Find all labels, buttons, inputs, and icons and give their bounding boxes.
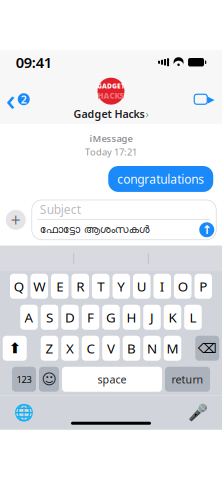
staticText: F <box>87 308 94 326</box>
staticText: N <box>147 339 157 357</box>
button[interactable]: P <box>194 274 212 299</box>
button[interactable]: I <box>153 274 171 299</box>
button[interactable]: F <box>82 305 99 330</box>
button[interactable]: K <box>164 305 181 330</box>
button[interactable]: N <box>143 336 161 361</box>
staticText: ⌫ <box>198 341 217 356</box>
button[interactable]: B <box>123 336 140 361</box>
staticText: ☺ <box>41 371 56 387</box>
staticText: O <box>178 277 188 295</box>
button[interactable]: H <box>123 305 140 330</box>
staticText: M <box>166 339 178 357</box>
button[interactable]: U <box>133 274 150 299</box>
staticText: ▶ <box>207 94 214 104</box>
staticText: R <box>76 277 84 295</box>
staticText: V <box>107 339 115 357</box>
staticText: G <box>106 308 116 326</box>
staticText: P <box>199 277 207 295</box>
staticText: Z <box>45 339 53 357</box>
staticText: Gadget Hacks <box>73 107 144 121</box>
button[interactable]: X <box>61 336 79 361</box>
button[interactable]: Back, 2 unread <box>0 82 36 116</box>
staticText: Subject <box>40 201 81 217</box>
button[interactable]: O <box>174 274 191 299</box>
button[interactable]: FaceTime video call <box>186 82 222 116</box>
staticText: 123 <box>16 373 31 385</box>
button[interactable]: Emoji <box>39 367 59 392</box>
staticText: 2 <box>21 92 27 106</box>
button[interactable]: D <box>61 305 79 330</box>
button[interactable]: R <box>71 274 89 299</box>
button[interactable]: V <box>102 336 120 361</box>
button[interactable]: A <box>20 305 38 330</box>
staticText: L <box>189 308 196 326</box>
button[interactable]: Z <box>41 336 58 361</box>
staticText: E <box>56 277 63 295</box>
staticText: C <box>86 339 94 357</box>
button[interactable]: Dictation <box>174 398 222 428</box>
button[interactable]: S <box>41 305 58 330</box>
button[interactable]: M <box>164 336 181 361</box>
staticText: Y <box>117 277 125 295</box>
staticText: ഫോട്ടോ ആശംസകൾ <box>40 225 150 235</box>
button[interactable]: Y <box>112 274 130 299</box>
button[interactable]: Delete <box>195 336 219 361</box>
button[interactable]: W <box>30 274 48 299</box>
staticText: 09:41 <box>16 52 52 72</box>
staticText: S <box>46 308 53 326</box>
staticText: + <box>11 208 21 231</box>
staticText: X <box>66 339 74 357</box>
button[interactable]: E <box>51 274 68 299</box>
staticText: 🌐 <box>14 404 34 422</box>
button[interactable]: space <box>62 367 162 392</box>
staticText: 🎤 <box>188 404 208 422</box>
staticText: iMessage <box>89 132 132 145</box>
staticText: ⬆ <box>9 340 21 356</box>
button[interactable]: Change keyboard <box>0 398 48 428</box>
staticText: H <box>126 308 136 326</box>
staticText: A <box>24 308 33 326</box>
button[interactable]: return <box>165 367 210 392</box>
staticText: K <box>168 308 176 326</box>
staticText: HACKS <box>97 90 124 101</box>
staticText: › <box>145 107 148 121</box>
staticText: return <box>171 372 203 386</box>
staticText: congratulations <box>117 171 204 187</box>
staticText: I <box>160 277 165 295</box>
staticText: T <box>97 277 104 295</box>
button[interactable]: Shift <box>3 336 27 361</box>
button[interactable]: 123 <box>12 367 36 392</box>
staticText: Q <box>14 277 24 295</box>
staticText: ↑ <box>202 223 212 237</box>
staticText: D <box>65 308 75 326</box>
button[interactable]: L <box>184 305 202 330</box>
staticText: W <box>33 277 45 295</box>
staticText: U <box>137 277 147 295</box>
staticText: B <box>127 339 136 357</box>
button[interactable]: T <box>92 274 109 299</box>
button[interactable]: Send <box>199 222 214 237</box>
button[interactable]: Q <box>10 274 27 299</box>
staticText: space <box>97 372 126 386</box>
button[interactable]: C <box>82 336 99 361</box>
button[interactable]: Add attachment <box>6 208 26 231</box>
staticText: GADGET <box>97 81 125 90</box>
button[interactable]: J <box>143 305 161 330</box>
staticText: ‹ <box>6 80 16 119</box>
button[interactable]: G <box>102 305 120 330</box>
staticText: J <box>150 308 154 326</box>
staticText: Today 17:21 <box>85 146 137 158</box>
